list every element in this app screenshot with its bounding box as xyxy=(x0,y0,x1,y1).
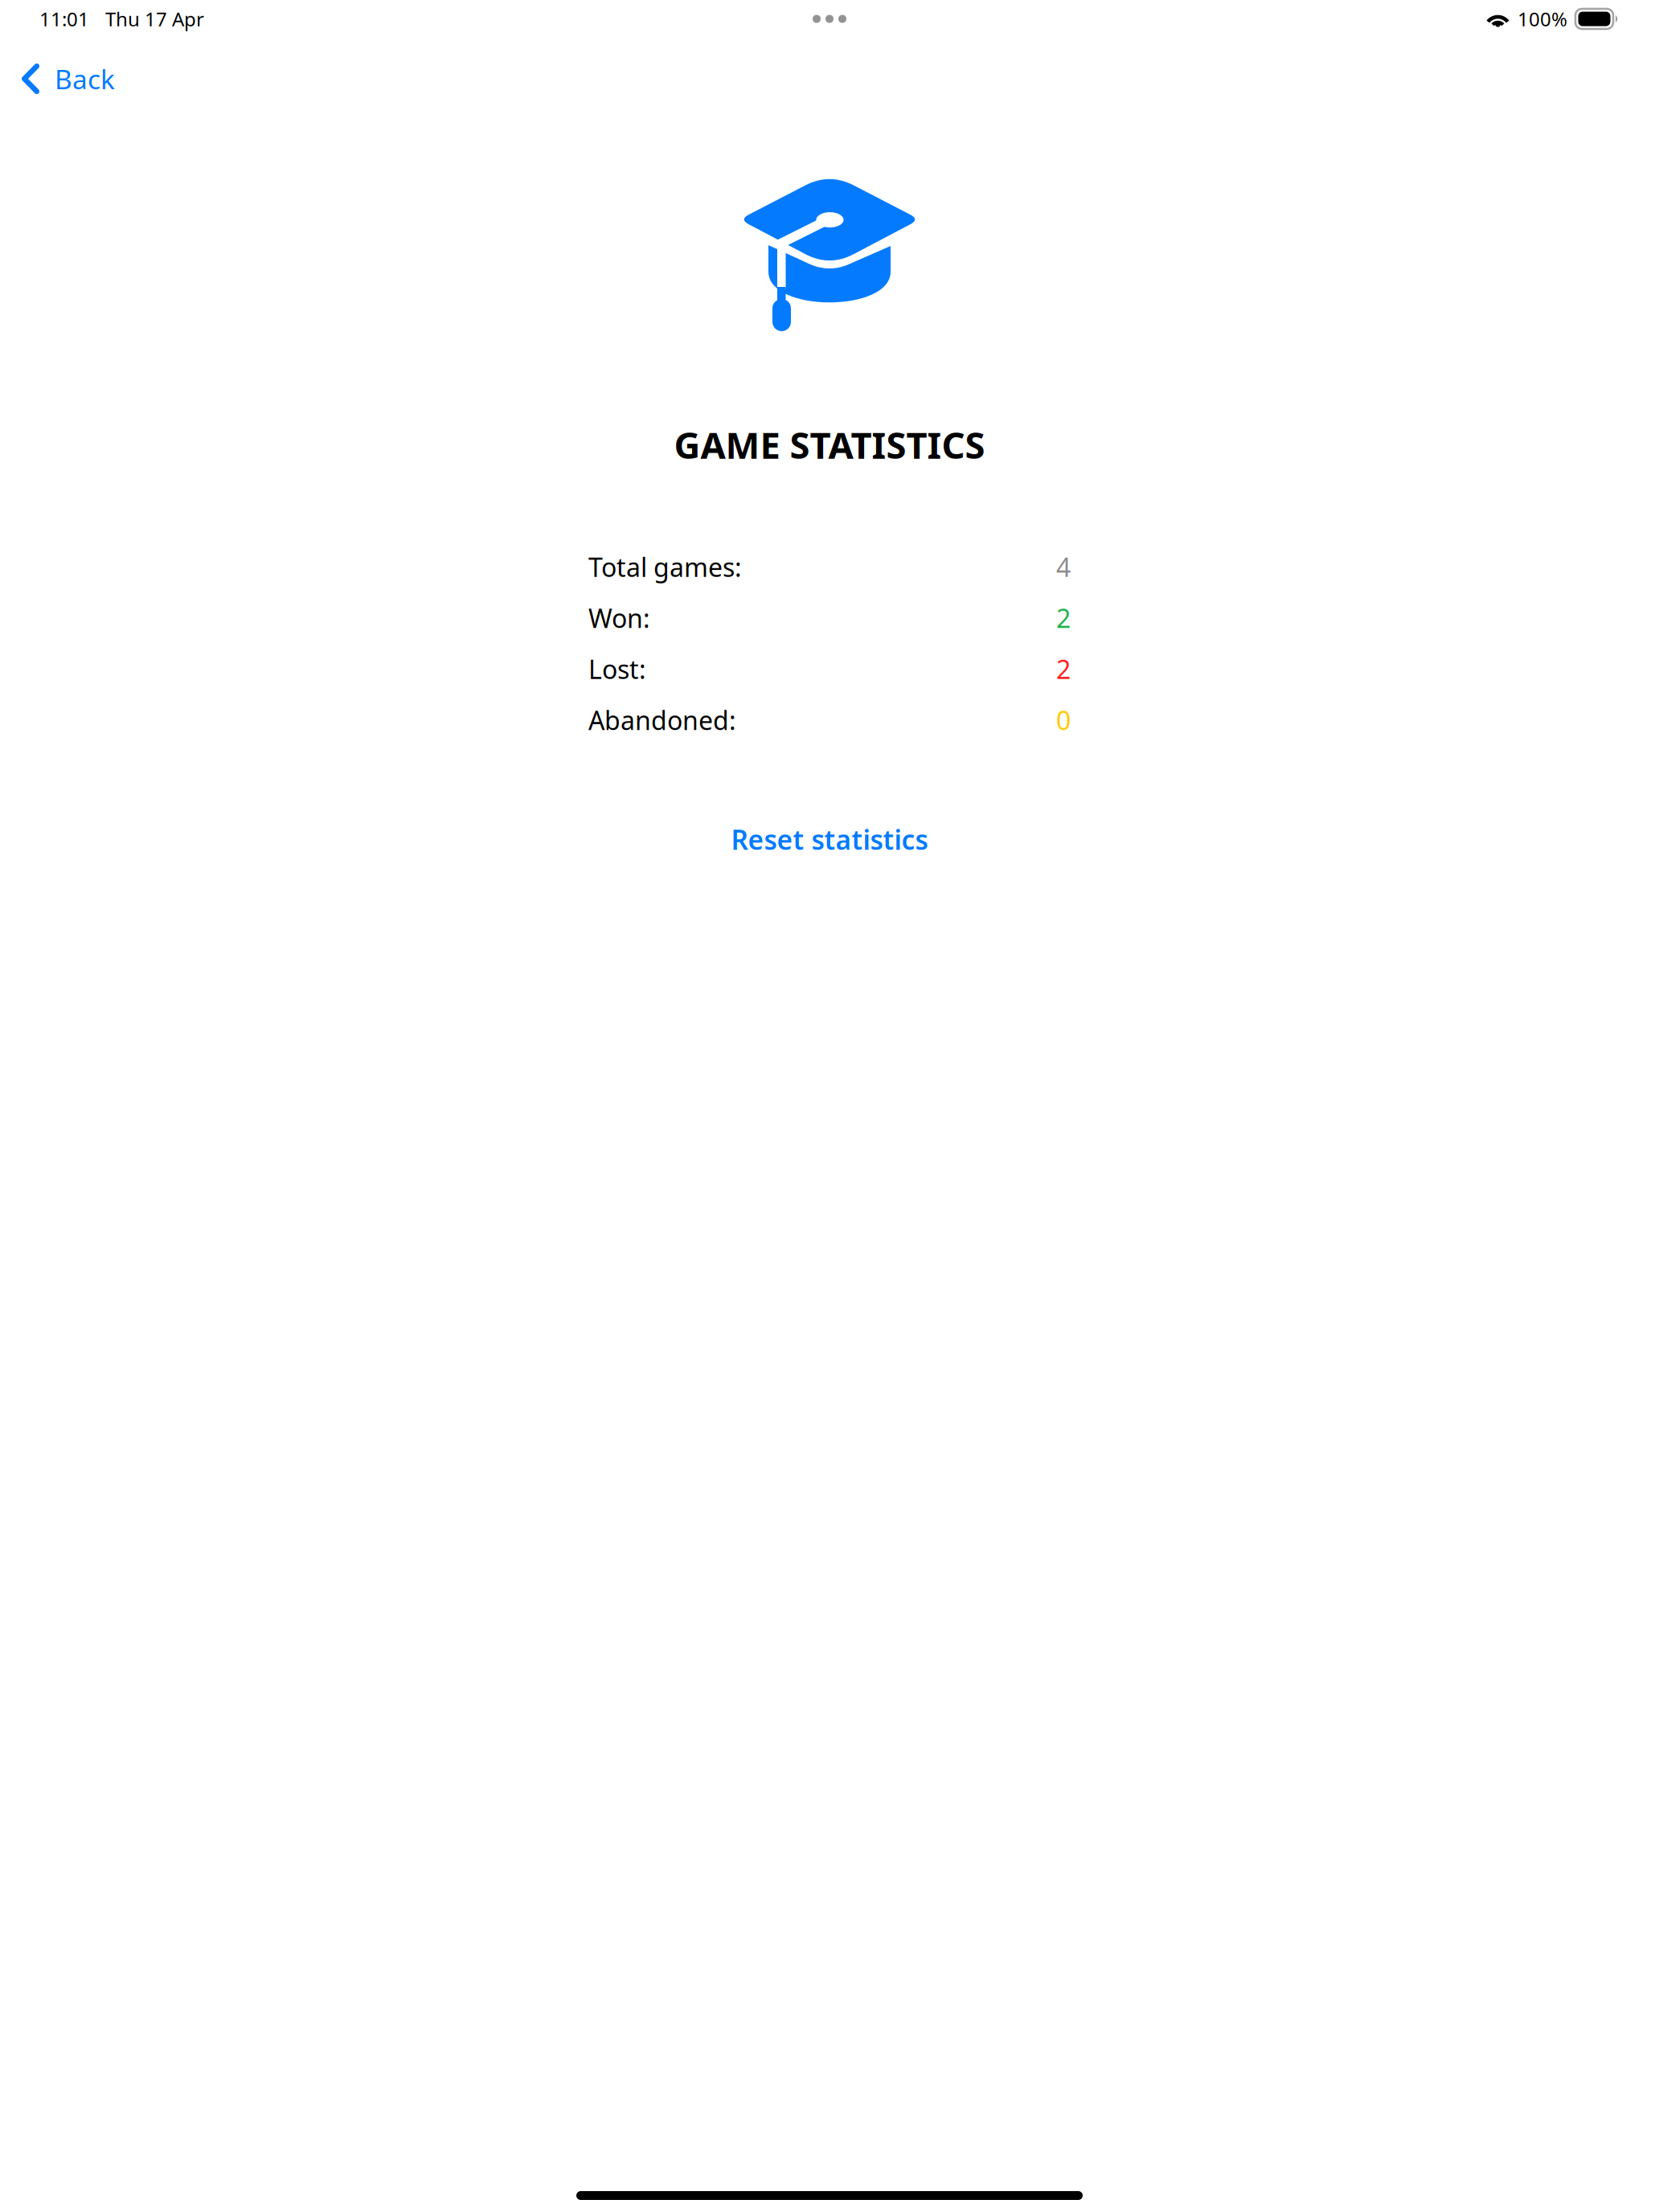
staticText: Back xyxy=(55,61,115,97)
staticText: Abandoned: xyxy=(588,703,736,737)
staticText: 2 xyxy=(1056,601,1071,635)
staticText: Won: xyxy=(588,601,650,635)
staticText: 4 xyxy=(1056,550,1071,584)
staticText: Thu 17 Apr xyxy=(105,6,204,32)
staticText: GAME STATISTICS xyxy=(674,420,985,469)
staticText: Lost: xyxy=(588,652,646,686)
button[interactable]: Reset statistics xyxy=(715,814,944,865)
staticText: 100% xyxy=(1518,6,1567,32)
staticText: Total games: xyxy=(588,550,742,584)
staticText: 0 xyxy=(1056,703,1071,737)
staticText: 11:01 xyxy=(39,6,89,32)
button[interactable]: Back xyxy=(0,38,134,120)
staticText: Reset statistics xyxy=(731,822,928,857)
staticText: 2 xyxy=(1056,652,1071,686)
